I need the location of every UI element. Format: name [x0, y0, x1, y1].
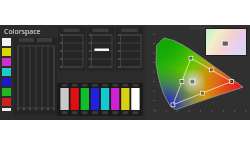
button[interactable]	[87, 27, 114, 71]
button[interactable]: CIE 1931 chromaticity diagram	[145, 25, 250, 120]
button[interactable]	[58, 27, 85, 71]
button[interactable]	[116, 27, 143, 71]
staticText: Colorspace	[4, 27, 41, 37]
button[interactable]: Colour patches	[57, 83, 143, 116]
button[interactable]: Colorspace chart	[14, 37, 57, 115]
